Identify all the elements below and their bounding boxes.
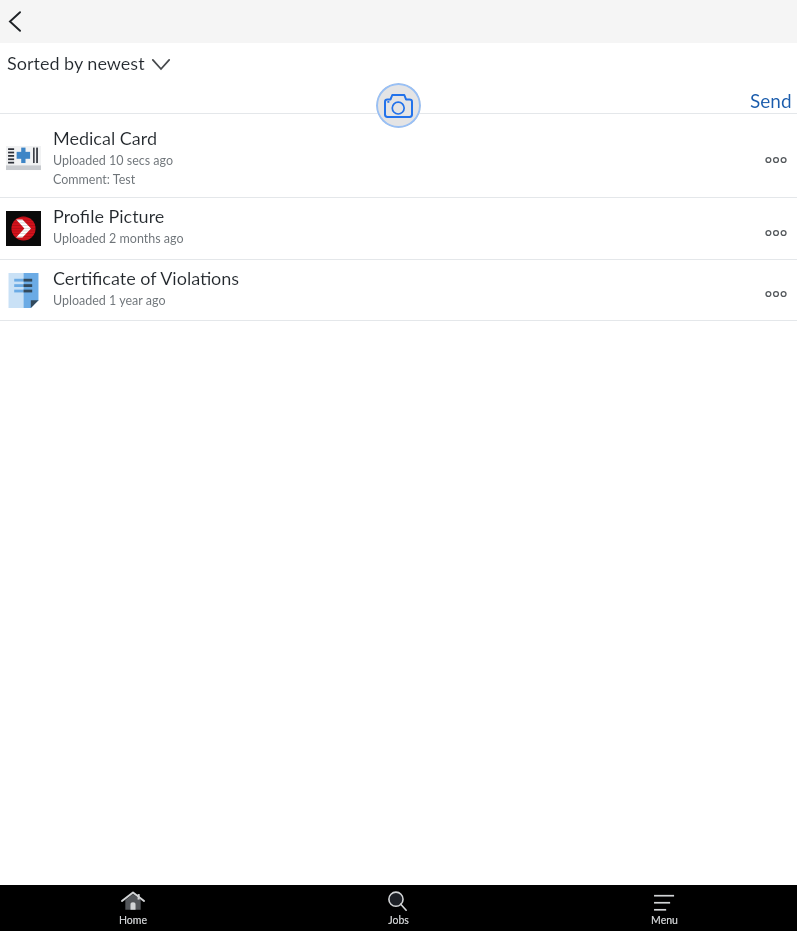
staticText: Jobs (388, 914, 409, 927)
button[interactable]: More options for Certificate of Violatio… (755, 272, 797, 316)
staticText: Profile Picture (53, 205, 165, 227)
staticText: Comment: Test (53, 172, 136, 187)
staticText: Uploaded 10 secs ago (53, 153, 174, 168)
staticText: Medical Card (53, 127, 157, 149)
staticText: Sorted by newest (7, 52, 145, 74)
button[interactable]: Back (0, 0, 44, 43)
staticText: Home (119, 914, 147, 927)
button[interactable]: Jobs (265, 885, 531, 927)
staticText: Certificate of Violations (53, 267, 240, 289)
button[interactable]: Send (738, 85, 797, 114)
staticText: Menu (651, 914, 678, 927)
button[interactable]: More options for Medical Card (755, 138, 797, 182)
button[interactable]: Sorted by newest (2, 49, 176, 77)
button[interactable]: Menu (531, 885, 797, 927)
staticText: Uploaded 1 year ago (53, 293, 166, 308)
button[interactable]: Certificate of Violations (0, 260, 797, 320)
staticText: Uploaded 2 months ago (53, 231, 184, 246)
button[interactable]: Take photo (376, 83, 421, 128)
staticText: Send (750, 89, 792, 112)
button[interactable]: Home (0, 885, 265, 927)
button[interactable]: Medical Card (0, 114, 797, 197)
button[interactable]: More options for Profile Picture (755, 211, 797, 255)
button[interactable]: Profile Picture (0, 198, 797, 259)
